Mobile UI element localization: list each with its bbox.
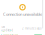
staticText: 2 minutes ago xyxy=(22,27,42,30)
staticText: Connection xyxy=(1,33,18,35)
staticText: Last updated xyxy=(1,25,13,32)
staticText: Connection unavailable xyxy=(3,12,42,17)
